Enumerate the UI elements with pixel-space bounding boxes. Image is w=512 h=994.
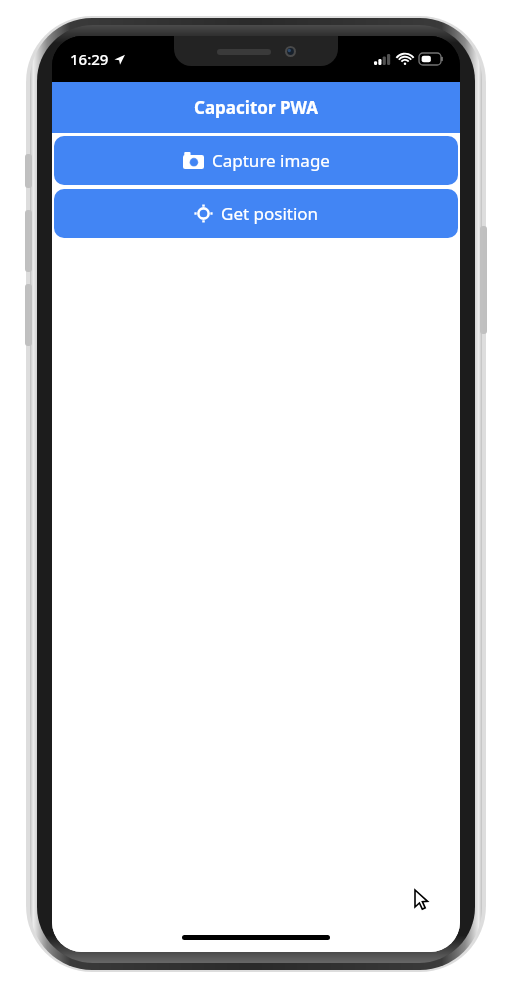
staticText: Get position xyxy=(221,202,319,225)
staticText: Capacitor PWA xyxy=(194,96,318,119)
staticText: 16:29 xyxy=(70,49,109,69)
button[interactable]: Location xyxy=(54,189,458,238)
staticText: Capture image xyxy=(212,149,330,172)
other: Camera xyxy=(183,152,204,169)
button[interactable]: Camera xyxy=(54,136,458,185)
other: Location xyxy=(194,204,213,223)
button[interactable]: Capacitor PWA xyxy=(52,82,460,133)
